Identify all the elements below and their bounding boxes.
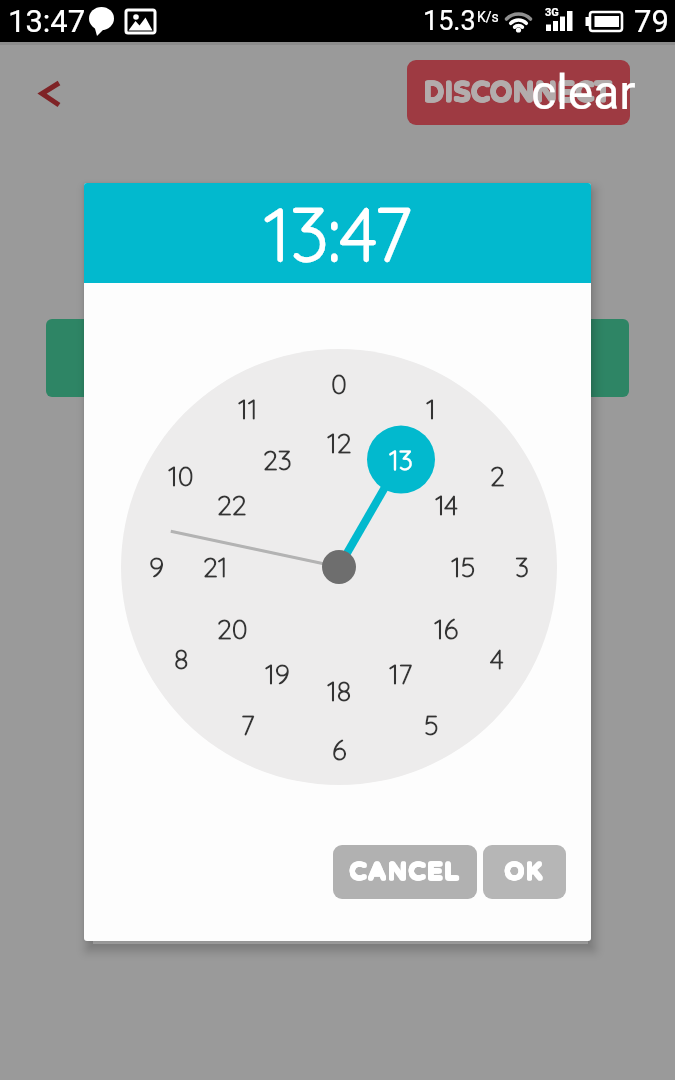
staticText: 1 bbox=[426, 392, 436, 426]
button[interactable] bbox=[46, 319, 629, 397]
staticText: OK bbox=[506, 858, 546, 886]
staticText: 22 bbox=[217, 488, 247, 522]
button[interactable]: clear bbox=[528, 58, 638, 126]
staticText: 3G bbox=[545, 6, 559, 18]
staticText: DISCONNECT bbox=[423, 76, 612, 107]
staticText: 13:47 bbox=[264, 188, 412, 279]
staticText: 13:47 bbox=[8, 3, 86, 39]
staticText: 23 bbox=[263, 443, 292, 477]
staticText: OK bbox=[505, 857, 545, 885]
staticText: K/s bbox=[477, 9, 499, 25]
staticText: 14 bbox=[435, 488, 458, 522]
staticText: DISCONNECT bbox=[424, 76, 613, 107]
button[interactable]: CANCEL bbox=[333, 845, 477, 899]
staticText: 19 bbox=[265, 657, 290, 691]
staticText: OK bbox=[506, 857, 546, 885]
staticText: 79 bbox=[634, 3, 669, 39]
staticText: DISCONNECT bbox=[424, 78, 613, 109]
staticText: OK bbox=[504, 858, 544, 886]
staticText: 5 bbox=[424, 708, 439, 742]
staticText: CANCEL bbox=[351, 858, 462, 886]
staticText: 11 bbox=[238, 392, 258, 426]
staticText: 15.3 bbox=[423, 5, 476, 37]
staticText: clear bbox=[531, 64, 636, 120]
staticText: OK bbox=[506, 859, 546, 887]
staticText: CANCEL bbox=[351, 859, 462, 887]
staticText: 9 bbox=[149, 550, 164, 584]
staticText: OK bbox=[505, 859, 545, 887]
staticText: 12 bbox=[327, 426, 352, 460]
staticText: DISCONNECT bbox=[423, 78, 612, 109]
button[interactable]: OK bbox=[483, 845, 566, 899]
staticText: DISCONNECT bbox=[425, 77, 614, 108]
staticText: CANCEL bbox=[350, 858, 461, 886]
staticText: OK bbox=[505, 858, 545, 886]
staticText: OK bbox=[504, 857, 544, 885]
staticText: 21 bbox=[203, 550, 228, 584]
staticText: 16 bbox=[434, 612, 459, 646]
staticText: CANCEL bbox=[349, 859, 460, 887]
staticText: 20 bbox=[217, 612, 248, 646]
staticText: DISCONNECT bbox=[423, 77, 612, 108]
button[interactable]: DISCONNECT bbox=[407, 60, 630, 125]
staticText: CANCEL bbox=[349, 858, 460, 886]
staticText: 7 bbox=[241, 708, 255, 742]
staticText: CANCEL bbox=[350, 857, 461, 885]
staticText: CANCEL bbox=[351, 857, 462, 885]
staticText: 18 bbox=[327, 674, 352, 708]
staticText: CANCEL bbox=[349, 857, 460, 885]
staticText: 2 bbox=[490, 459, 505, 493]
staticText: OK bbox=[504, 859, 544, 887]
staticText: 3 bbox=[515, 550, 530, 584]
button[interactable] bbox=[28, 72, 72, 116]
staticText: DISCONNECT bbox=[425, 76, 614, 107]
staticText: 8 bbox=[174, 642, 189, 676]
staticText: 0 bbox=[331, 367, 347, 401]
staticText: 15 bbox=[451, 550, 476, 584]
button[interactable]: 13 bbox=[367, 426, 435, 494]
staticText: 6 bbox=[332, 733, 347, 767]
staticText: DISCONNECT bbox=[424, 77, 613, 108]
staticText: 10 bbox=[168, 459, 194, 493]
staticText: DISCONNECT bbox=[425, 78, 614, 109]
staticText: CANCEL bbox=[350, 859, 461, 887]
staticText: 17 bbox=[389, 657, 413, 691]
staticText: 4 bbox=[490, 642, 504, 676]
staticText: 13 bbox=[389, 443, 413, 477]
